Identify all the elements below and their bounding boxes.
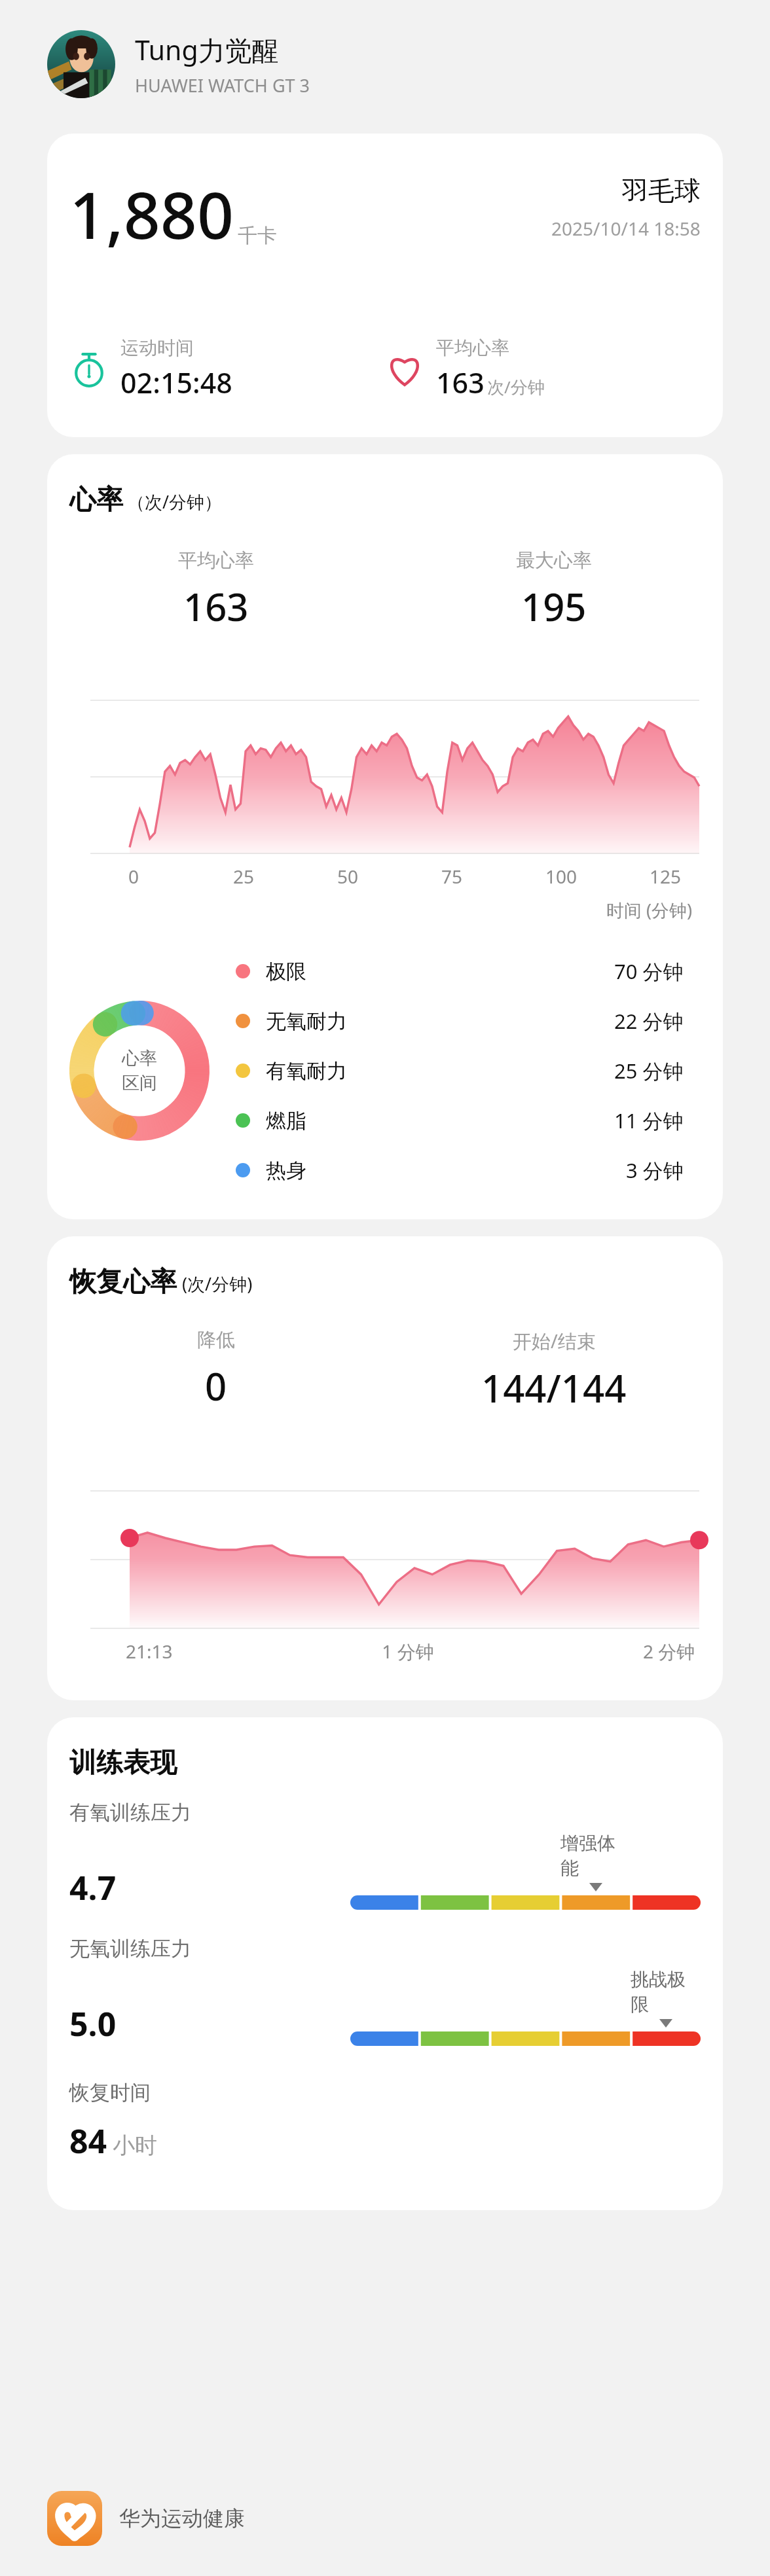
staticText: 22 分钟 bbox=[614, 1007, 684, 1035]
staticText: 0 bbox=[128, 864, 233, 889]
staticText: 2025/10/14 18:58 bbox=[551, 216, 701, 241]
staticText: 0 bbox=[205, 1360, 227, 1412]
staticText: 时间 (分钟) bbox=[606, 898, 693, 922]
staticText: 羽毛球 bbox=[622, 174, 701, 207]
staticText: 144/144 bbox=[481, 1362, 627, 1414]
staticText: 1 分钟 bbox=[173, 1639, 643, 1664]
button[interactable]: 热身 bbox=[236, 1156, 697, 1184]
staticText: 次/分钟 bbox=[487, 375, 545, 399]
staticText: 最大心率 bbox=[516, 548, 592, 573]
other: Duration bbox=[69, 349, 109, 389]
button[interactable]: User avatar bbox=[47, 30, 115, 98]
staticText: 25 分钟 bbox=[614, 1057, 684, 1084]
staticText: 100 bbox=[545, 864, 650, 889]
staticText: 3 分钟 bbox=[626, 1156, 684, 1184]
staticText: 极限 bbox=[266, 959, 614, 984]
staticText: 热身 bbox=[266, 1158, 626, 1183]
staticText: 无氧训练压力 bbox=[69, 1936, 191, 1961]
other: Average heart rate bbox=[385, 349, 424, 389]
staticText: 70 分钟 bbox=[614, 957, 684, 985]
staticText: 11 分钟 bbox=[614, 1107, 684, 1134]
staticText: 有氧训练压力 bbox=[69, 1800, 191, 1825]
staticText: 4.7 bbox=[69, 1865, 117, 1910]
staticText: 125 bbox=[650, 864, 697, 889]
staticText: 燃脂 bbox=[266, 1108, 614, 1134]
button[interactable]: Huawei Health bbox=[47, 2461, 770, 2576]
button[interactable]: 无氧耐力 bbox=[236, 1007, 697, 1035]
staticText: 163 bbox=[436, 363, 485, 402]
staticText: 挑战极限 bbox=[631, 1968, 701, 2016]
staticText: 21:13 bbox=[126, 1639, 173, 1664]
staticText: 增强体能 bbox=[560, 1832, 631, 1880]
other: Huawei Health bbox=[47, 2491, 102, 2546]
button[interactable]: 有氧耐力 bbox=[236, 1057, 697, 1084]
staticText: 84 bbox=[69, 2119, 107, 2163]
staticText: 有氧耐力 bbox=[266, 1058, 614, 1084]
staticText: 2 分钟 bbox=[643, 1639, 695, 1664]
staticText: 1,880 bbox=[69, 170, 234, 257]
staticText: HUAWEI WATCH GT 3 bbox=[135, 73, 310, 98]
staticText: 降低 bbox=[197, 1328, 235, 1352]
button[interactable]: 极限 bbox=[236, 957, 697, 985]
staticText: 训练表现 bbox=[69, 1746, 177, 1780]
staticText: 平均心率 bbox=[178, 548, 254, 573]
staticText: 千卡 bbox=[238, 223, 277, 248]
staticText: 开始/结束 bbox=[513, 1328, 596, 1354]
staticText: 25 bbox=[233, 864, 337, 889]
staticText: 02:15:48 bbox=[120, 363, 232, 402]
staticText: 平均心率 bbox=[436, 336, 509, 359]
staticText: 心率 bbox=[69, 483, 123, 517]
button[interactable]: Duration bbox=[69, 336, 385, 402]
staticText: 心率 bbox=[122, 1047, 157, 1069]
staticText: 75 bbox=[441, 864, 545, 889]
staticText: Tung力觉醒 bbox=[135, 31, 279, 68]
staticText: 195 bbox=[521, 581, 587, 632]
staticText: 华为运动健康 bbox=[119, 2505, 245, 2531]
button[interactable]: Average heart rate bbox=[385, 336, 701, 402]
button[interactable]: 燃脂 bbox=[236, 1107, 697, 1134]
staticText: 163 bbox=[183, 581, 249, 632]
staticText: 区间 bbox=[122, 1072, 157, 1094]
staticText: 无氧耐力 bbox=[266, 1009, 614, 1034]
staticText: (次/分钟) bbox=[182, 1272, 253, 1296]
staticText: （次/分钟） bbox=[127, 490, 223, 514]
staticText: 恢复时间 bbox=[69, 2080, 151, 2105]
staticText: 恢复心率 bbox=[69, 1265, 177, 1299]
staticText: 50 bbox=[337, 864, 441, 889]
staticText: 运动时间 bbox=[120, 336, 194, 359]
staticText: 小时 bbox=[113, 2132, 157, 2160]
staticText: 5.0 bbox=[69, 2001, 117, 2046]
